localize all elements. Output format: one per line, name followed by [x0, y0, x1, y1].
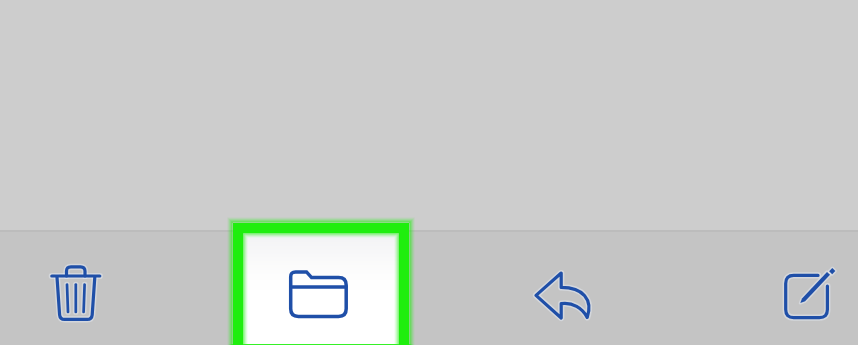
button[interactable]: Delete — [16, 236, 136, 345]
button[interactable]: Move to folder — [233, 223, 409, 345]
button[interactable]: Compose — [738, 236, 858, 345]
button[interactable]: Reply — [503, 236, 623, 345]
